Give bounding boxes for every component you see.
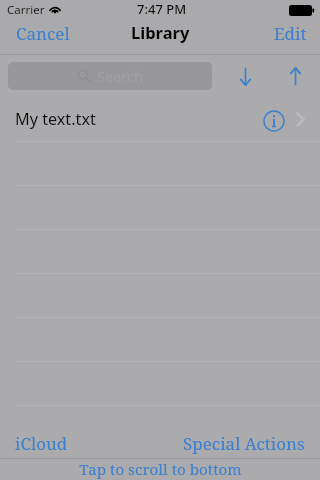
- staticText: Special Actions: [183, 432, 305, 455]
- staticText: Edit: [274, 22, 307, 45]
- button[interactable]: Scroll to top: [281, 59, 309, 93]
- staticText: 7:47 PM: [137, 0, 187, 18]
- staticText: Carrier: [7, 2, 45, 18]
- staticText: My text.txt: [15, 108, 96, 130]
- button[interactable]: My text.txt: [0, 97, 320, 141]
- button[interactable]: Special Actions: [173, 424, 320, 462]
- staticText: Tap to scroll to bottom: [79, 459, 242, 480]
- staticText: Library: [131, 21, 190, 43]
- button[interactable]: Cancel: [0, 16, 82, 51]
- button[interactable]: iCloud: [0, 424, 78, 462]
- button[interactable]: Tap to scroll to bottom: [0, 459, 320, 480]
- button[interactable]: Edit: [262, 16, 320, 51]
- button[interactable]: Scroll to bottom: [231, 59, 259, 93]
- button[interactable]: More info: [261, 108, 287, 134]
- staticText: iCloud: [15, 432, 68, 455]
- staticText: Cancel: [16, 22, 70, 45]
